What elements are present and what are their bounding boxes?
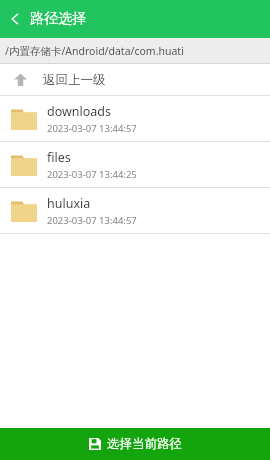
button[interactable]: 返回上一级 — [0, 64, 270, 96]
staticText: files — [47, 149, 71, 166]
button[interactable]: Back — [0, 0, 30, 38]
staticText: 2023-03-07 13:44:57 — [47, 122, 137, 135]
staticText: 2023-03-07 13:44:57 — [47, 214, 137, 227]
staticText: 路径选择 — [30, 10, 86, 28]
button[interactable]: huluxia — [0, 188, 270, 234]
button[interactable]: downloads — [0, 96, 270, 142]
staticText: 返回上一级 — [43, 72, 106, 88]
staticText: /内置存储卡/Android/data/com.huati — [5, 44, 184, 58]
button[interactable]: files — [0, 142, 270, 188]
staticText: 2023-03-07 13:44:25 — [47, 168, 137, 181]
staticText: 选择当前路径 — [107, 436, 182, 452]
staticText: huluxia — [47, 195, 91, 212]
staticText: downloads — [47, 103, 112, 120]
button[interactable]: 选择当前路径 — [0, 428, 270, 460]
